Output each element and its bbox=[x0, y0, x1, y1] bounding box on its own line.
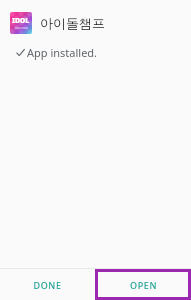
button[interactable]: OPEN bbox=[95, 269, 191, 300]
staticText: IDOL bbox=[12, 16, 30, 26]
button[interactable]: DONE bbox=[0, 269, 95, 300]
other: 아이돌챔프 app icon bbox=[10, 12, 32, 34]
staticText: OPEN bbox=[130, 279, 157, 291]
staticText: 아이돌챔프 bbox=[40, 15, 105, 31]
staticText: App installed. bbox=[27, 45, 98, 60]
staticText: DONE bbox=[33, 279, 62, 291]
